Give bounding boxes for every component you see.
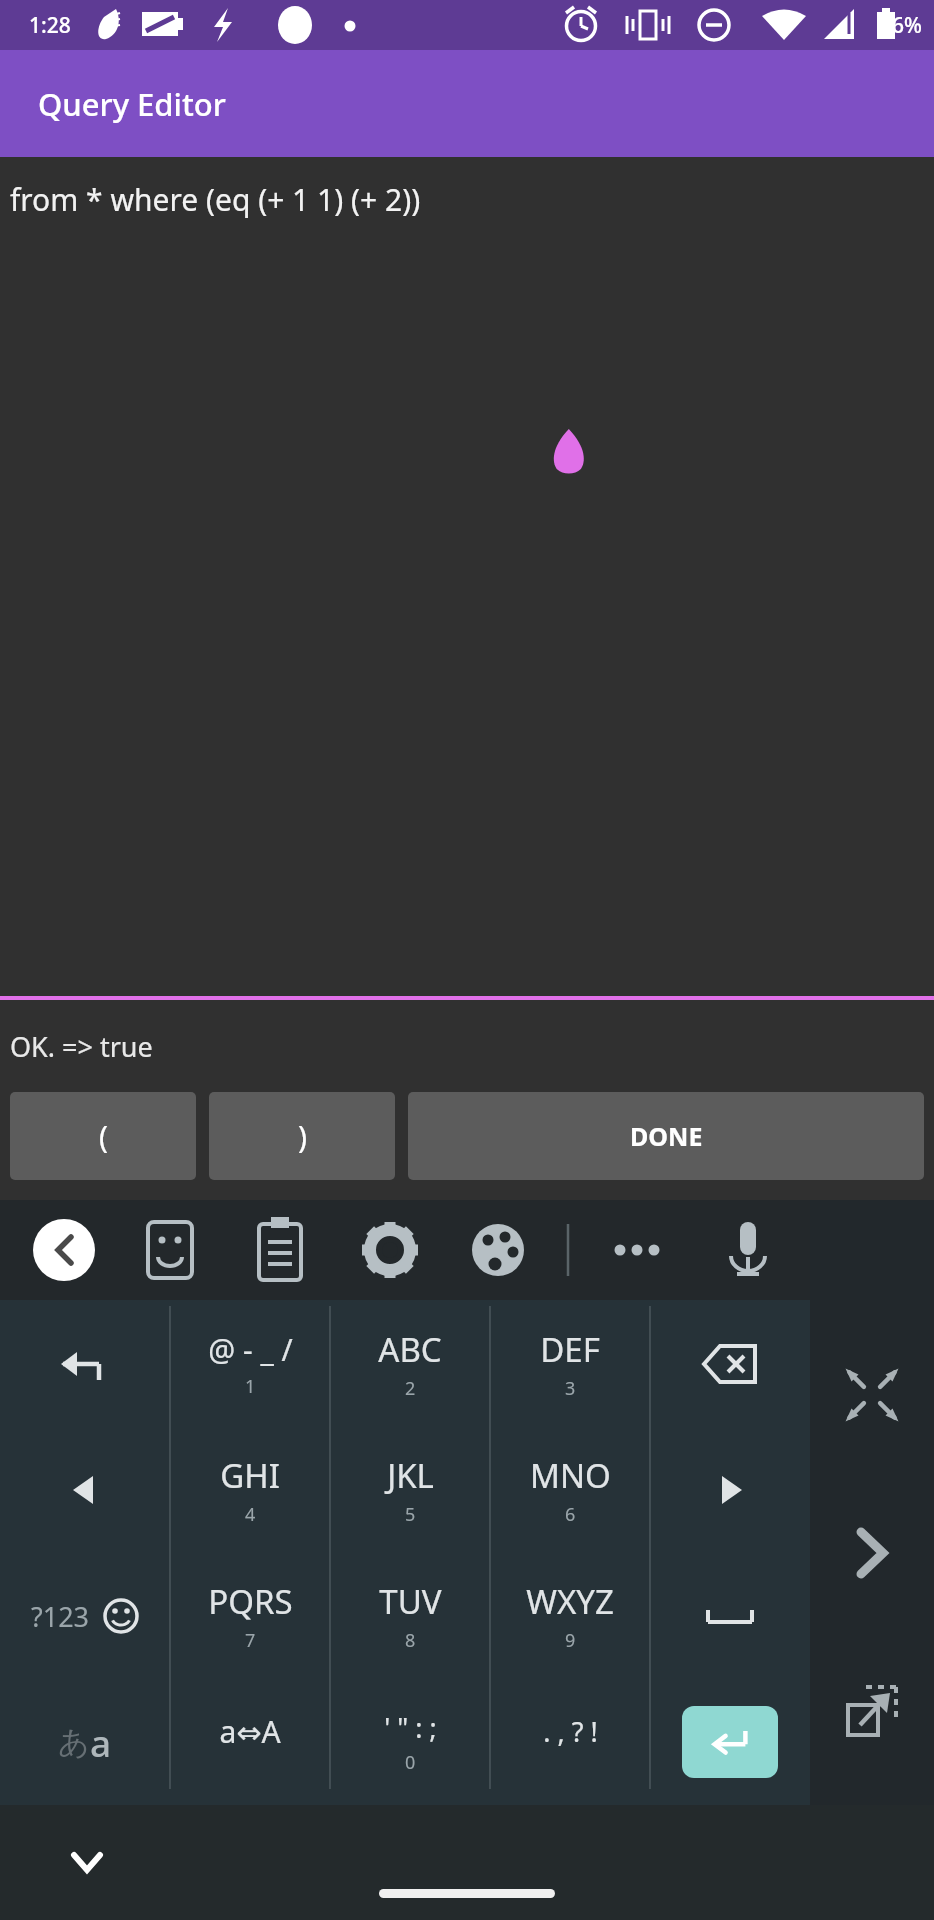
staticText: 46% xyxy=(880,11,922,40)
staticText: 8 xyxy=(405,1628,416,1653)
button[interactable]: ( xyxy=(10,1092,196,1180)
button[interactable]: MNO xyxy=(490,1427,650,1553)
button[interactable]: Symbols and emoji xyxy=(0,1553,170,1679)
staticText: 7 xyxy=(245,1628,256,1653)
button[interactable]: DEF xyxy=(490,1300,650,1427)
staticText: ABC xyxy=(378,1327,442,1372)
staticText: @ - _ / xyxy=(208,1329,293,1370)
staticText: PQRS xyxy=(208,1579,293,1624)
staticText: 9 xyxy=(565,1628,576,1653)
staticText: OK. => true xyxy=(10,1028,153,1065)
staticText: 1:28 xyxy=(29,11,71,40)
button[interactable]: Floating keyboard xyxy=(840,1679,904,1743)
button[interactable]: Resize keyboard xyxy=(839,1362,905,1428)
staticText: from * where (eq (+ 1 1) (+ 2)) xyxy=(10,179,421,220)
button[interactable]: Switch input mode xyxy=(0,1679,170,1805)
button[interactable]: Move keyboard right xyxy=(837,1518,907,1588)
staticText: MNO xyxy=(530,1453,611,1498)
button[interactable]: ' " : ; xyxy=(330,1679,490,1805)
button[interactable]: Space xyxy=(650,1553,810,1679)
button[interactable]: ) xyxy=(209,1092,395,1180)
staticText: ) xyxy=(298,1116,307,1157)
staticText: TUV xyxy=(379,1579,442,1624)
button[interactable]: a⇔A xyxy=(170,1679,330,1805)
button[interactable]: TUV xyxy=(330,1553,490,1679)
button[interactable]: GHI xyxy=(170,1427,330,1553)
button[interactable]: Move cursor left xyxy=(0,1427,170,1553)
staticText: 5 xyxy=(405,1502,416,1527)
button[interactable]: . , ? ! xyxy=(490,1679,650,1805)
staticText: WXYZ xyxy=(526,1579,614,1624)
button[interactable]: PQRS xyxy=(170,1553,330,1679)
staticText: 4 xyxy=(245,1502,256,1527)
staticText: 6 xyxy=(565,1502,576,1527)
button[interactable]: Enter xyxy=(650,1679,810,1805)
staticText: a⇔A xyxy=(219,1711,281,1752)
staticText: DEF xyxy=(540,1327,600,1372)
staticText: JKL xyxy=(387,1453,434,1498)
staticText: ?123 xyxy=(31,1598,90,1635)
staticText: ( xyxy=(99,1116,108,1157)
button[interactable]: @ - _ / xyxy=(170,1300,330,1427)
button[interactable]: Undo xyxy=(0,1300,170,1427)
staticText: . , ? ! xyxy=(543,1713,598,1750)
button[interactable]: DONE xyxy=(408,1092,924,1180)
button[interactable]: from * where (eq (+ 1 1) (+ 2)) xyxy=(0,157,934,1000)
button[interactable]: Move cursor right xyxy=(650,1427,810,1553)
staticText: 1 xyxy=(245,1374,256,1399)
staticText: Query Editor xyxy=(38,83,226,125)
staticText: GHI xyxy=(220,1453,280,1498)
staticText: DONE xyxy=(630,1119,703,1153)
button[interactable]: WXYZ xyxy=(490,1553,650,1679)
button[interactable]: JKL xyxy=(330,1427,490,1553)
button[interactable]: Delete xyxy=(650,1300,810,1427)
button[interactable]: ABC xyxy=(330,1300,490,1427)
staticText: 0 xyxy=(405,1750,416,1775)
staticText: a xyxy=(90,1717,112,1767)
button[interactable]: Back xyxy=(33,1219,95,1281)
staticText: 3 xyxy=(565,1376,576,1401)
staticText: 2 xyxy=(405,1376,416,1401)
button[interactable]: Hide keyboard xyxy=(60,1835,114,1889)
staticText: ' " : ; xyxy=(384,1709,437,1746)
staticText: あ xyxy=(58,1723,90,1762)
